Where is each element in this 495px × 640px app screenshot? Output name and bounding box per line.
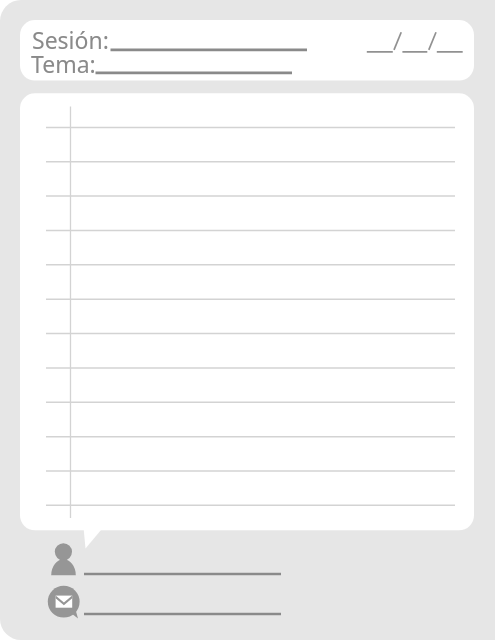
button[interactable]: Sesión field: [107, 28, 310, 52]
staticText: Sesión:: [32, 24, 109, 55]
button[interactable]: Fecha field: [364, 28, 466, 54]
staticText: Tema:: [31, 48, 96, 79]
button[interactable]: Tema field: [92, 52, 295, 76]
button[interactable]: Correo electrónico: [44, 584, 284, 620]
button[interactable]: Nombre: [44, 540, 284, 580]
button[interactable]: Notas: [20, 93, 474, 530]
